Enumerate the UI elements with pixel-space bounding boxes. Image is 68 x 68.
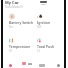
button[interactable]: Total Push (37, 44, 63, 53)
staticText: Off (37, 25, 42, 29)
button[interactable]: Profile (54, 60, 63, 68)
button[interactable]: Car (37, 60, 46, 68)
staticText: Total Push (37, 44, 55, 49)
button[interactable]: Ignition (37, 20, 63, 29)
button[interactable]: Home (6, 60, 15, 68)
button[interactable]: icon0 (9, 14, 15, 19)
button[interactable]: icon1 (37, 14, 43, 19)
staticText: Battery Switch (9, 20, 34, 25)
button[interactable]: icon3 (37, 38, 43, 43)
button[interactable]: My Car (5, 0, 23, 9)
staticText: 21 (9, 49, 13, 53)
staticText: 12 (37, 49, 41, 53)
staticText: Tesla Model 3 (5, 5, 23, 9)
button[interactable]: icon2 (9, 38, 15, 43)
staticText: Ignition (37, 20, 51, 25)
staticText: Temperature (9, 44, 31, 49)
button[interactable]: Temperature (9, 44, 35, 53)
button[interactable]: Battery Switch (9, 20, 35, 29)
staticText: My Car (5, 0, 19, 5)
staticText: On (9, 25, 13, 29)
button[interactable]: Stats (21, 60, 32, 68)
